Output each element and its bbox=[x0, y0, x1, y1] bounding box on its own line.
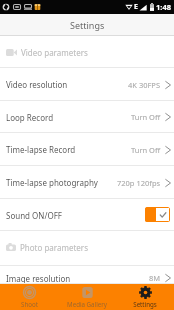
staticText: 8M bbox=[149, 273, 161, 283]
button[interactable]: Time-lapse photography bbox=[0, 166, 174, 199]
staticText: Media Gallery bbox=[67, 300, 107, 308]
staticText: Video parameters bbox=[21, 47, 88, 58]
staticText: Settings bbox=[70, 19, 105, 31]
staticText: 720p 120fps bbox=[117, 178, 161, 188]
staticText: Video resolution bbox=[6, 79, 68, 90]
staticText: Image resolution bbox=[6, 273, 71, 284]
staticText: Settings bbox=[133, 300, 157, 308]
button[interactable]: Sound toggle bbox=[145, 207, 170, 222]
button[interactable]: Image resolution bbox=[0, 266, 174, 284]
staticText: Time-lapse photography bbox=[6, 177, 98, 188]
button[interactable]: Video resolution bbox=[0, 68, 174, 101]
button[interactable]: Sound ON/OFF bbox=[0, 199, 174, 231]
button[interactable]: Shoot bbox=[0, 284, 58, 310]
staticText: Time-lapse Record bbox=[6, 144, 76, 155]
staticText: 1:48 bbox=[156, 2, 171, 12]
button[interactable]: Loop Record bbox=[0, 101, 174, 133]
button[interactable]: Settings bbox=[116, 284, 174, 310]
button[interactable]: Media Gallery bbox=[58, 284, 116, 310]
staticText: Turn Off bbox=[131, 145, 161, 155]
staticText: Sound ON/OFF bbox=[6, 210, 62, 221]
staticText: Shoot bbox=[21, 300, 38, 308]
button[interactable]: Time-lapse Record bbox=[0, 133, 174, 166]
staticText: Turn Off bbox=[131, 112, 161, 122]
staticText: Loop Record bbox=[6, 112, 54, 123]
staticText: 4K 30FPS bbox=[128, 80, 161, 90]
staticText: E bbox=[134, 2, 138, 12]
staticText: Photo parameters bbox=[20, 242, 88, 253]
